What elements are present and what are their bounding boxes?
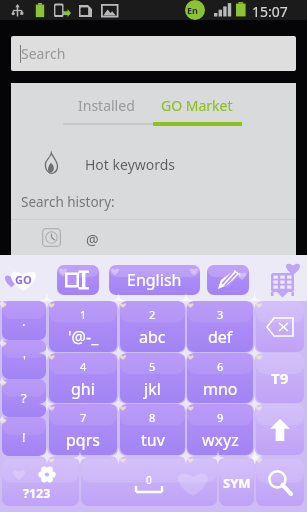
staticText: tuv bbox=[141, 429, 165, 451]
staticText: wxyz bbox=[202, 429, 239, 451]
staticText: 2 bbox=[149, 307, 156, 322]
button[interactable]: 0 bbox=[81, 459, 217, 506]
staticText: Installed bbox=[78, 96, 135, 115]
staticText: GO Market bbox=[161, 96, 233, 115]
staticText: abc bbox=[139, 326, 166, 348]
button[interactable]: Hide keyboard bbox=[262, 259, 304, 299]
staticText: 5 bbox=[149, 359, 156, 374]
staticText: En bbox=[187, 4, 198, 16]
staticText: jkl bbox=[144, 378, 161, 400]
staticText: Hot keywords bbox=[85, 155, 176, 174]
button[interactable]: 7 bbox=[49, 404, 117, 455]
button[interactable] bbox=[256, 301, 304, 352]
button[interactable]: SYM bbox=[219, 459, 254, 506]
button[interactable]: @ bbox=[11, 220, 296, 258]
staticText: 0 bbox=[146, 473, 152, 487]
staticText: 8 bbox=[149, 410, 156, 425]
button[interactable]: Search bbox=[11, 36, 296, 71]
button[interactable]: T9 bbox=[256, 353, 304, 403]
button[interactable]: ?123 bbox=[2, 459, 79, 506]
staticText: 4 bbox=[80, 359, 87, 374]
staticText: English bbox=[127, 269, 182, 291]
staticText: Search history: bbox=[21, 193, 115, 211]
staticText: '@-_ bbox=[68, 326, 99, 348]
button[interactable]: 6 bbox=[187, 353, 253, 403]
button[interactable]: 1 bbox=[49, 301, 117, 352]
staticText: @ bbox=[86, 230, 99, 249]
button[interactable]: 8 bbox=[120, 404, 185, 455]
staticText: ghi bbox=[71, 378, 95, 400]
staticText: GO bbox=[15, 272, 32, 287]
button[interactable]: English bbox=[109, 265, 200, 295]
staticText: Search bbox=[21, 44, 66, 63]
staticText: pqrs bbox=[66, 429, 100, 451]
button[interactable]: 2 bbox=[120, 301, 185, 352]
staticText: . bbox=[22, 312, 26, 330]
staticText: 7 bbox=[80, 410, 87, 425]
button[interactable]: 3 bbox=[187, 301, 253, 352]
button[interactable]: GO Keyboard menu bbox=[5, 266, 45, 294]
button[interactable]: . bbox=[2, 301, 46, 340]
staticText: 3 bbox=[217, 307, 224, 322]
button[interactable]: ! bbox=[2, 417, 46, 456]
staticText: 6 bbox=[217, 359, 224, 374]
button[interactable]: Theme bbox=[207, 265, 249, 295]
button[interactable] bbox=[256, 459, 304, 506]
staticText: ? bbox=[21, 389, 27, 407]
button[interactable]: 5 bbox=[120, 353, 185, 403]
staticText: 9 bbox=[217, 410, 224, 425]
staticText: mno bbox=[203, 378, 238, 400]
staticText: ?123 bbox=[23, 485, 51, 502]
button[interactable]: Installed bbox=[63, 83, 153, 127]
staticText: 15:07 bbox=[252, 2, 288, 21]
button[interactable]: Switch layout bbox=[57, 265, 99, 295]
staticText: T9 bbox=[271, 368, 289, 388]
button[interactable]: 9 bbox=[187, 404, 253, 455]
button[interactable]: 4 bbox=[49, 353, 117, 403]
staticText: 1 bbox=[80, 307, 87, 322]
button[interactable]: GO Market bbox=[153, 83, 252, 127]
button[interactable]: ' bbox=[2, 340, 46, 379]
button[interactable]: Hot keywords bbox=[11, 140, 296, 186]
button[interactable]: ? bbox=[2, 379, 46, 417]
staticText: def bbox=[208, 326, 233, 348]
staticText: ! bbox=[22, 428, 26, 446]
staticText: ' bbox=[23, 351, 26, 369]
button[interactable] bbox=[256, 404, 304, 455]
staticText: SYM bbox=[223, 474, 251, 492]
